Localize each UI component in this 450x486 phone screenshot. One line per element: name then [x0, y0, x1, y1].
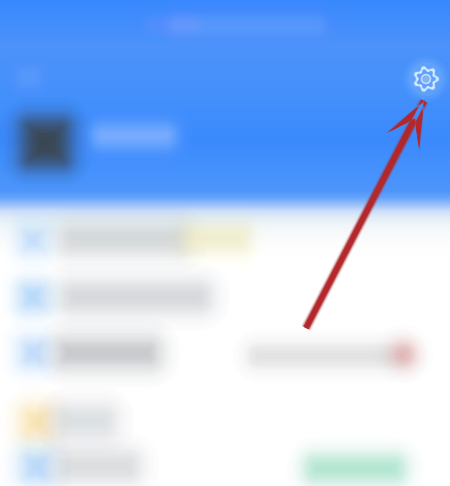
button[interactable]	[0, 0, 450, 486]
button[interactable]	[0, 0, 450, 486]
button[interactable]	[0, 0, 450, 486]
button[interactable]: Settings	[0, 0, 450, 486]
button[interactable]	[0, 0, 450, 486]
button[interactable]	[0, 0, 450, 486]
